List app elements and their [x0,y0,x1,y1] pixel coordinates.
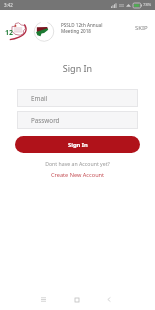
staticText: Password [31,116,60,125]
button[interactable]: Home [67,291,86,308]
button[interactable]: Recent apps [34,291,53,308]
button[interactable]: Create New Account [47,170,109,180]
staticText: Dont have an Account yet? [0,160,155,167]
button[interactable]: Back [99,291,118,308]
staticText: Email [31,94,48,103]
staticText: Create New Account [51,171,105,179]
button[interactable]: Email [17,89,138,107]
staticText: 12 [5,28,14,38]
staticText: Sign In [68,141,88,149]
button[interactable]: Password [17,111,138,129]
staticText: PSSLD 12th Annual Meeting 2018 [61,22,128,34]
staticText: 3:42 [4,2,13,8]
button[interactable]: Sign In [15,136,140,153]
button[interactable]: SKIP [128,19,155,37]
staticText: 78% [143,2,152,8]
staticText: Sign In [0,62,155,74]
staticText: SKIP [135,24,148,32]
